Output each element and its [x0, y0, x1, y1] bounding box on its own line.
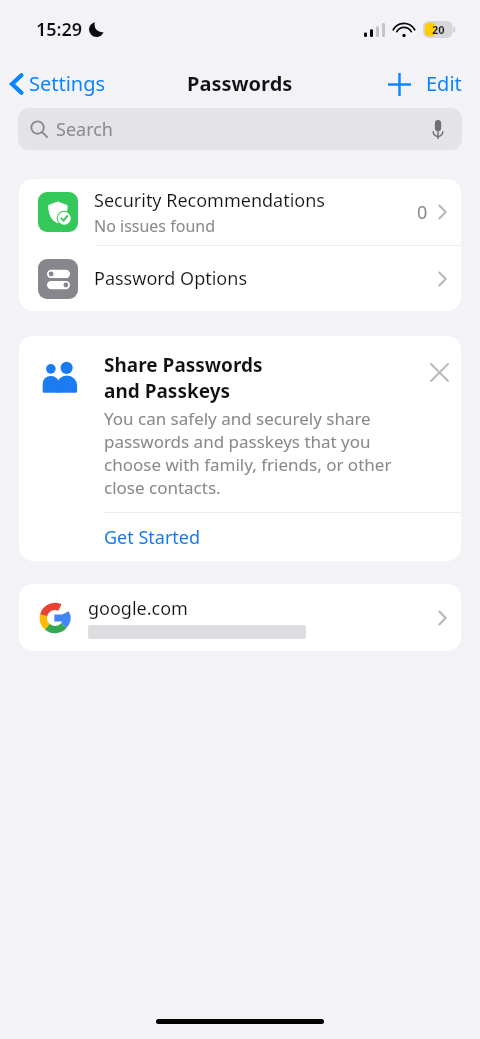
button[interactable]: Voice search	[426, 117, 450, 141]
button[interactable]: Search	[18, 108, 462, 150]
staticText: 15:29	[36, 17, 83, 42]
staticText: Settings	[29, 70, 106, 97]
staticText: Share Passwords	[104, 352, 263, 378]
staticText: Password Options	[94, 266, 438, 291]
button[interactable]: Add password	[382, 67, 416, 101]
staticText: Edit	[426, 70, 462, 97]
staticText: No issues found	[94, 215, 215, 237]
staticText: Get Started	[104, 525, 201, 550]
staticText: Passwords	[187, 70, 293, 97]
button[interactable]: Password Options	[19, 246, 461, 311]
button[interactable]: Dismiss	[417, 352, 461, 392]
staticText: 20	[432, 22, 445, 37]
staticText: Security Recommendations	[94, 188, 325, 213]
button[interactable]: Settings	[0, 66, 114, 101]
staticText: 0	[417, 200, 428, 225]
button[interactable]: google.com	[19, 584, 461, 651]
staticText: You can safely and securely share passwo…	[104, 407, 407, 499]
button[interactable]: Get Started	[19, 513, 461, 561]
button[interactable]: Security Recommendations	[19, 179, 461, 245]
staticText: and Passkeys	[104, 378, 231, 404]
button[interactable]: Edit	[422, 64, 466, 103]
staticText: google.com	[88, 596, 188, 621]
staticText: Search	[56, 117, 113, 142]
